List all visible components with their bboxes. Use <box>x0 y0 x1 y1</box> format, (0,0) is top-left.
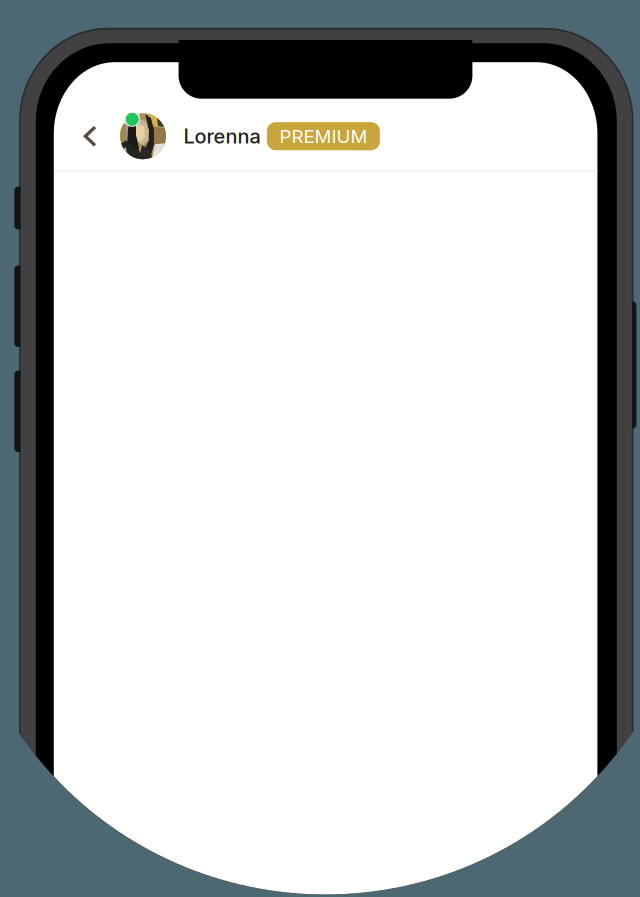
button[interactable]: Back <box>70 113 110 159</box>
staticText: PREMIUM <box>279 125 367 147</box>
button[interactable]: Lorenna <box>120 108 540 164</box>
staticText: Lorenna <box>183 124 260 148</box>
